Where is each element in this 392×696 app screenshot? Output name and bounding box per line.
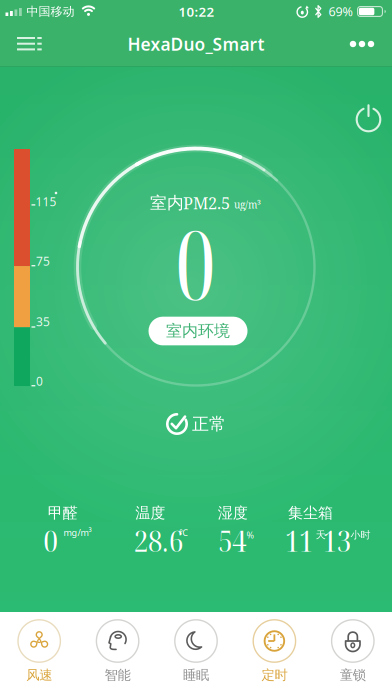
staticText: 智能: [105, 667, 131, 683]
staticText: 童锁: [340, 667, 366, 683]
button[interactable]: 童锁: [314, 612, 392, 696]
button[interactable]: More: [340, 22, 384, 66]
staticText: 室内环境: [166, 321, 230, 341]
staticText: 0: [172, 197, 218, 328]
staticText: 天: [316, 529, 326, 541]
staticText: 睡眠: [183, 667, 209, 683]
staticText: 115: [35, 193, 56, 210]
staticText: 35: [36, 313, 50, 330]
button[interactable]: Menu: [7, 22, 51, 66]
staticText: 11: [285, 520, 313, 560]
button[interactable]: 定时: [235, 612, 313, 696]
staticText: 湿度: [218, 503, 248, 522]
staticText: 54: [218, 520, 246, 560]
button[interactable]: 智能: [79, 612, 157, 696]
staticText: 中国移动: [26, 4, 74, 19]
staticText: 13: [323, 520, 351, 560]
staticText: 75: [36, 253, 50, 269]
staticText: 温度: [135, 503, 165, 522]
staticText: 风速: [26, 667, 52, 683]
staticText: 28.6: [134, 520, 183, 560]
staticText: 小时: [350, 529, 370, 541]
staticText: 正常: [192, 413, 226, 435]
staticText: 集尘箱: [288, 503, 333, 522]
staticText: mg/m³: [63, 526, 91, 539]
staticText: ℃: [179, 526, 188, 539]
button[interactable]: Power: [346, 97, 390, 141]
staticText: 0: [43, 520, 57, 560]
button[interactable]: 风速: [0, 612, 78, 696]
staticText: 定时: [261, 667, 287, 683]
staticText: ug/m³: [234, 198, 261, 211]
staticText: 甲醛: [48, 503, 78, 522]
staticText: PM2.5: [183, 192, 230, 214]
staticText: 室内: [150, 192, 184, 213]
staticText: %: [247, 529, 255, 541]
staticText: 10:22: [178, 3, 214, 20]
staticText: 69%: [328, 3, 352, 20]
button[interactable]: 睡眠: [157, 612, 235, 696]
staticText: HexaDuo_Smart: [127, 32, 264, 55]
button[interactable]: 室内环境: [148, 317, 247, 345]
staticText: 0: [36, 373, 43, 389]
